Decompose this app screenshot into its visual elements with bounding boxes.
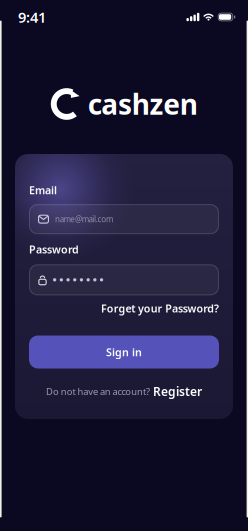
staticText: Password	[29, 242, 79, 256]
staticText: 9:41	[18, 7, 46, 27]
staticText: Register	[153, 383, 202, 399]
button[interactable]: Sign in	[29, 335, 219, 368]
staticText: name@mail.com	[55, 214, 113, 224]
button[interactable]: Register	[153, 383, 202, 399]
staticText: Sign in	[106, 345, 142, 359]
staticText: Do not have an account?	[46, 385, 150, 398]
button[interactable]: name@mail.com	[29, 204, 219, 234]
button[interactable]	[29, 264, 219, 295]
staticText: Email	[29, 183, 57, 197]
staticText: cashzen	[88, 85, 198, 123]
staticText: Forget your Password?	[101, 301, 219, 315]
button[interactable]: Forget your Password?	[101, 301, 219, 315]
